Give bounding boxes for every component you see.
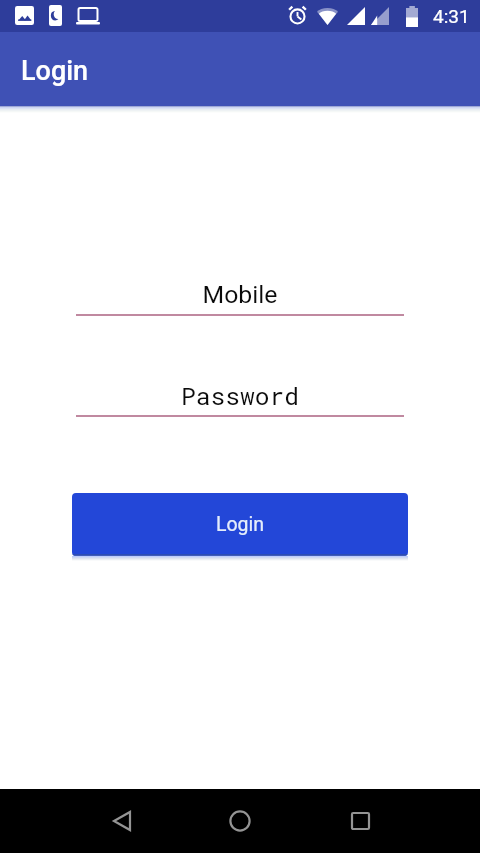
staticText: Login bbox=[21, 55, 89, 87]
button[interactable]: Login bbox=[72, 493, 408, 556]
button[interactable]: Mobile bbox=[76, 276, 404, 316]
staticText: 4:31 bbox=[433, 5, 470, 27]
button[interactable]: Home bbox=[200, 789, 280, 853]
button[interactable]: Password bbox=[76, 375, 404, 417]
staticText: Mobile bbox=[76, 280, 404, 309]
staticText: Password bbox=[76, 379, 404, 411]
staticText: Login bbox=[216, 513, 265, 536]
button[interactable]: Back bbox=[82, 789, 162, 853]
button[interactable]: Recents bbox=[320, 789, 400, 853]
